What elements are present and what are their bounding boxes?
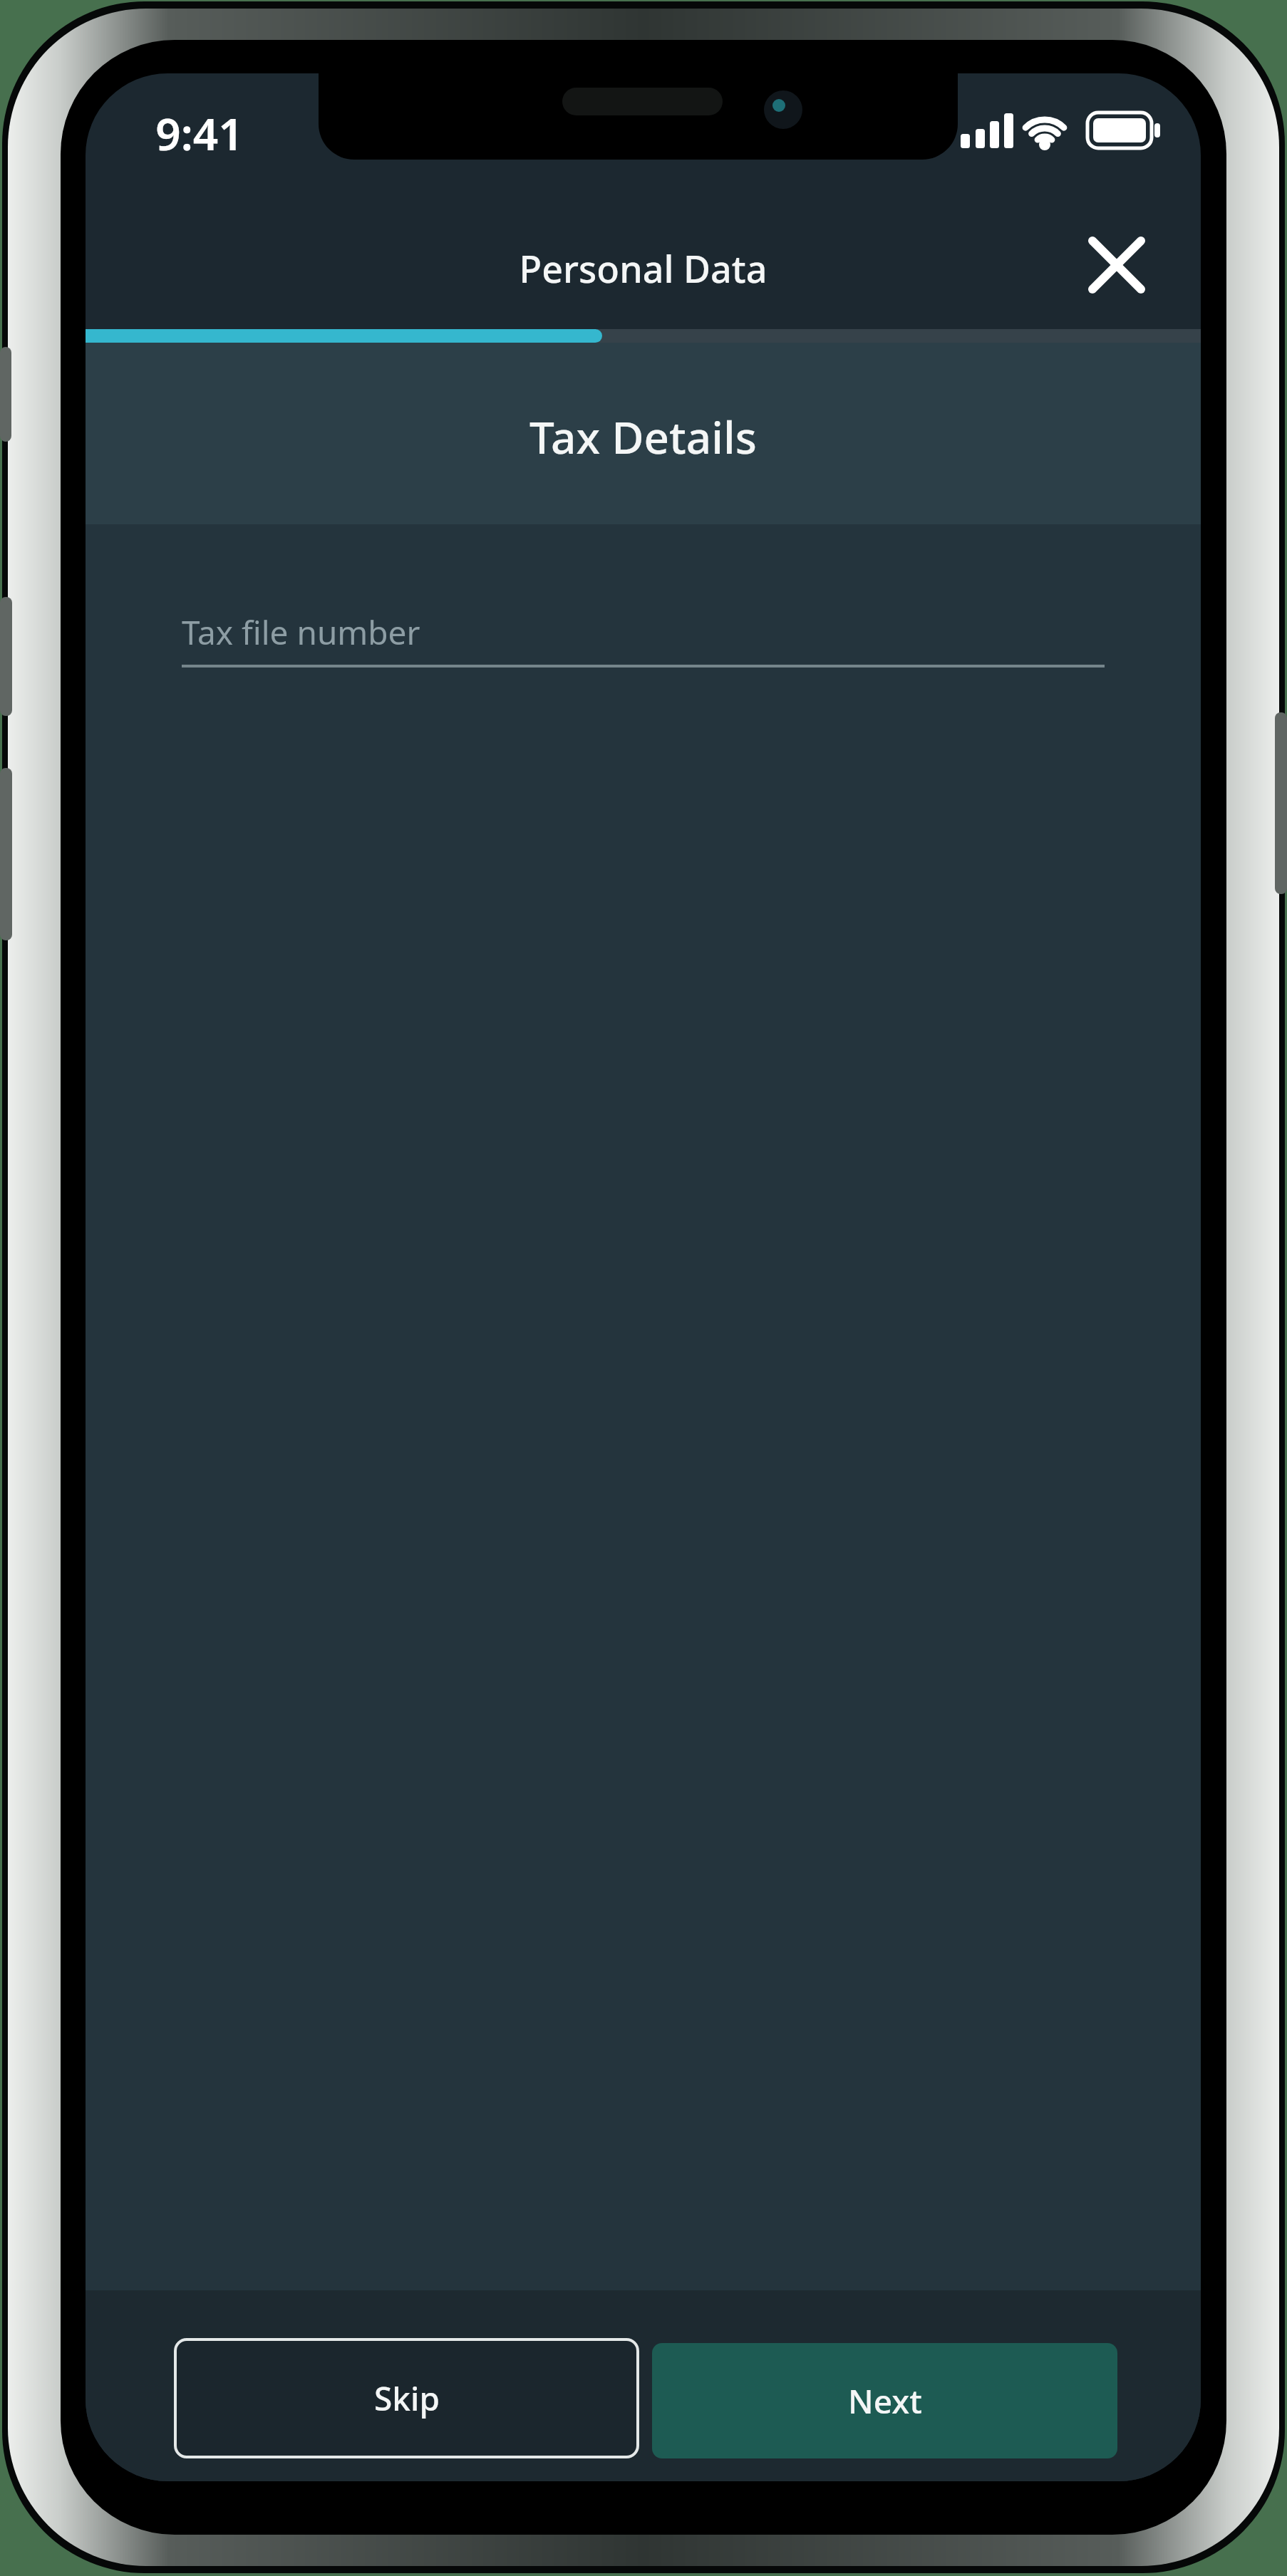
staticText: 9:41 bbox=[118, 103, 281, 163]
button[interactable]: Next bbox=[652, 2343, 1117, 2458]
staticText: Personal Data bbox=[86, 243, 1201, 294]
staticText: Tax Details bbox=[86, 407, 1201, 467]
button[interactable] bbox=[1080, 228, 1154, 302]
staticText: Next bbox=[848, 2379, 922, 2424]
button[interactable]: Tax file number bbox=[182, 572, 1105, 672]
staticText: Tax file number bbox=[182, 610, 420, 655]
button[interactable]: Skip bbox=[174, 2338, 639, 2458]
staticText: Skip bbox=[374, 2376, 440, 2421]
